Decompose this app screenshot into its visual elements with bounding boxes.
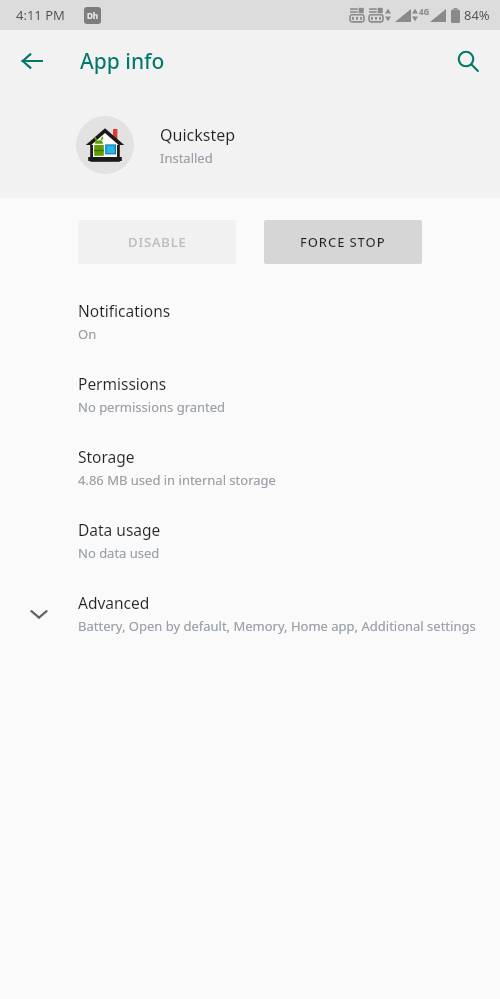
- button[interactable]: Quickstep: [0, 92, 500, 198]
- button[interactable]: Back: [8, 37, 56, 85]
- staticText: Data usage: [78, 519, 161, 540]
- staticText: No permissions granted: [78, 398, 226, 416]
- staticText: No data used: [78, 544, 160, 562]
- button[interactable]: DISABLE: [78, 220, 236, 264]
- button[interactable]: Data usage: [0, 509, 500, 582]
- button[interactable]: Search: [444, 37, 492, 85]
- staticText: FORCE STOP: [300, 233, 386, 251]
- staticText: 84%: [464, 6, 490, 24]
- staticText: On: [78, 325, 97, 343]
- staticText: Installed: [160, 149, 213, 167]
- staticText: Dh: [87, 10, 99, 21]
- staticText: Storage: [78, 446, 135, 467]
- button[interactable]: Advanced: [0, 582, 500, 655]
- button[interactable]: Notifications: [0, 290, 500, 363]
- staticText: 4:11 PM: [16, 6, 65, 24]
- staticText: 4G: [419, 6, 430, 17]
- staticText: DISABLE: [128, 233, 187, 251]
- staticText: Battery, Open by default, Memory, Home a…: [78, 617, 478, 635]
- staticText: App info: [80, 47, 165, 76]
- staticText: Permissions: [78, 373, 167, 394]
- staticText: Advanced: [78, 592, 150, 613]
- button[interactable]: FORCE STOP: [264, 220, 422, 264]
- button[interactable]: Permissions: [0, 363, 500, 436]
- staticText: Quickstep: [160, 124, 236, 146]
- staticText: 4.86 MB used in internal storage: [78, 471, 276, 489]
- button[interactable]: Storage: [0, 436, 500, 509]
- staticText: Notifications: [78, 300, 171, 321]
